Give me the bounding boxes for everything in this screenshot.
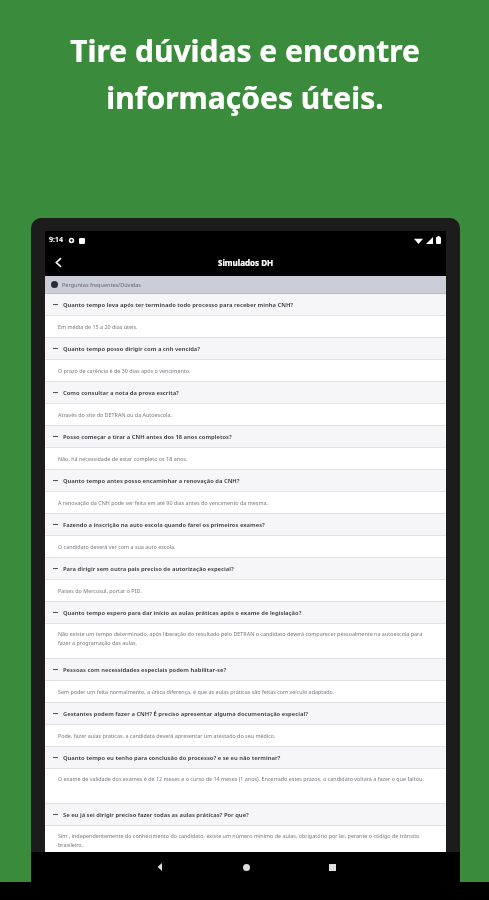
button[interactable]: Back xyxy=(143,852,177,882)
staticText: Quanto tempo espero para dar início as a… xyxy=(63,609,302,617)
button[interactable]: Quanto tempo leva após ter terminado tod… xyxy=(45,294,446,315)
button[interactable]: Fazendo a inscrição na auto escola quand… xyxy=(45,514,446,535)
button[interactable]: Países do Mercosul, portar o PID. xyxy=(45,580,446,601)
button[interactable]: Quanto tempo espero para dar início as a… xyxy=(45,602,446,623)
staticText: 9:14 xyxy=(49,235,63,245)
staticText: Para dirigir sem outra pais preciso de a… xyxy=(63,565,234,573)
staticText: Perguntas frequentes/Dúvidas xyxy=(62,281,141,288)
button[interactable]: Pessoas com necessidades especiais podem… xyxy=(45,659,446,680)
button[interactable]: Quanto tempo eu tenho para conclusão do … xyxy=(45,747,446,768)
button[interactable]: Home xyxy=(229,852,263,882)
staticText: Quanto tempo eu tenho para conclusão do … xyxy=(63,754,281,762)
staticText: Países do Mercosul, portar o PID. xyxy=(58,587,142,594)
staticText: Se eu já sei dirigir preciso fazer todas… xyxy=(63,811,249,819)
button[interactable]: Perguntas frequentes/Dúvidas xyxy=(45,276,446,293)
staticText: informações úteis. xyxy=(106,77,384,118)
button[interactable]: O exame de validade dos exames é de 12 m… xyxy=(45,769,446,803)
staticText: Gestantes podem fazer a CNH? É preciso a… xyxy=(63,710,308,718)
staticText: Simulados DH xyxy=(218,257,274,268)
button[interactable]: Como consultar a nota da prova escrita? xyxy=(45,382,446,403)
button[interactable]: Não, há necessidade de estar completo os… xyxy=(45,448,446,469)
button[interactable]: Quanto tempo preciso esperar para fazer … xyxy=(45,861,446,882)
staticText: Quanto tempo posso dirigir com a cnh ven… xyxy=(63,345,201,353)
button[interactable]: Para dirigir sem outra pais preciso de a… xyxy=(45,558,446,579)
staticText: O prazo de carência é de 30 dias após o … xyxy=(58,367,191,374)
staticText: Não existe um tempo determinado, após li… xyxy=(58,630,436,647)
staticText: Tire dúvidas e encontre xyxy=(70,30,420,71)
button[interactable]: Recent apps xyxy=(315,852,349,882)
staticText: Quanto tempo preciso esperar para fazer … xyxy=(63,868,213,876)
button[interactable]: Sim , independentemente do conhecimento … xyxy=(45,826,446,860)
button[interactable]: Gestantes podem fazer a CNH? É preciso a… xyxy=(45,703,446,724)
staticText: Como consultar a nota da prova escrita? xyxy=(63,389,179,397)
button[interactable]: O candidato deverá ver com a sua auto es… xyxy=(45,536,446,557)
button[interactable]: Não existe um tempo determinado, após li… xyxy=(45,624,446,658)
button[interactable]: Quanto tempo antes posso encaminhar a re… xyxy=(45,470,446,491)
staticText: Não, há necessidade de estar completo os… xyxy=(58,455,188,462)
staticText: Sem poder um feita normalmente, a única … xyxy=(58,688,335,695)
staticText: Quanto tempo antes posso encaminhar a re… xyxy=(63,477,240,485)
staticText: Posso começar a tirar a CNH antes dos 18… xyxy=(63,433,232,441)
staticText: O exame de validade dos exames é de 12 m… xyxy=(58,775,424,782)
staticText: O candidato deverá ver com a sua auto es… xyxy=(58,543,176,550)
staticText: Em média de 15 a 20 dias úteis. xyxy=(58,323,138,330)
button[interactable]: Quanto tempo posso dirigir com a cnh ven… xyxy=(45,338,446,359)
button[interactable]: Se eu já sei dirigir preciso fazer todas… xyxy=(45,804,446,825)
staticText: Fazendo a inscrição na auto escola quand… xyxy=(63,521,265,529)
staticText: Sim , independentemente do conhecimento … xyxy=(58,832,436,849)
button[interactable]: Sem poder um feita normalmente, a única … xyxy=(45,681,446,702)
button[interactable]: Pode, fazer aulas práticas, a candidata … xyxy=(45,725,446,746)
staticText: Quanto tempo leva após ter terminado tod… xyxy=(63,301,294,309)
staticText: A renovação da CNH pode ser feita em até… xyxy=(58,499,268,506)
staticText: Através do site do DETRAN ou da Autoesco… xyxy=(58,411,172,418)
button[interactable]: Em média de 15 a 20 dias úteis. xyxy=(45,316,446,337)
button[interactable]: Através do site do DETRAN ou da Autoesco… xyxy=(45,404,446,425)
staticText: Pode, fazer aulas práticas, a candidata … xyxy=(58,732,276,739)
button[interactable]: Posso começar a tirar a CNH antes dos 18… xyxy=(45,426,446,447)
button[interactable]: A renovação da CNH pode ser feita em até… xyxy=(45,492,446,513)
button[interactable]: O prazo de carência é de 30 dias após o … xyxy=(45,360,446,381)
staticText: Pessoas com necessidades especiais podem… xyxy=(63,666,227,674)
button[interactable]: Back xyxy=(45,249,71,275)
